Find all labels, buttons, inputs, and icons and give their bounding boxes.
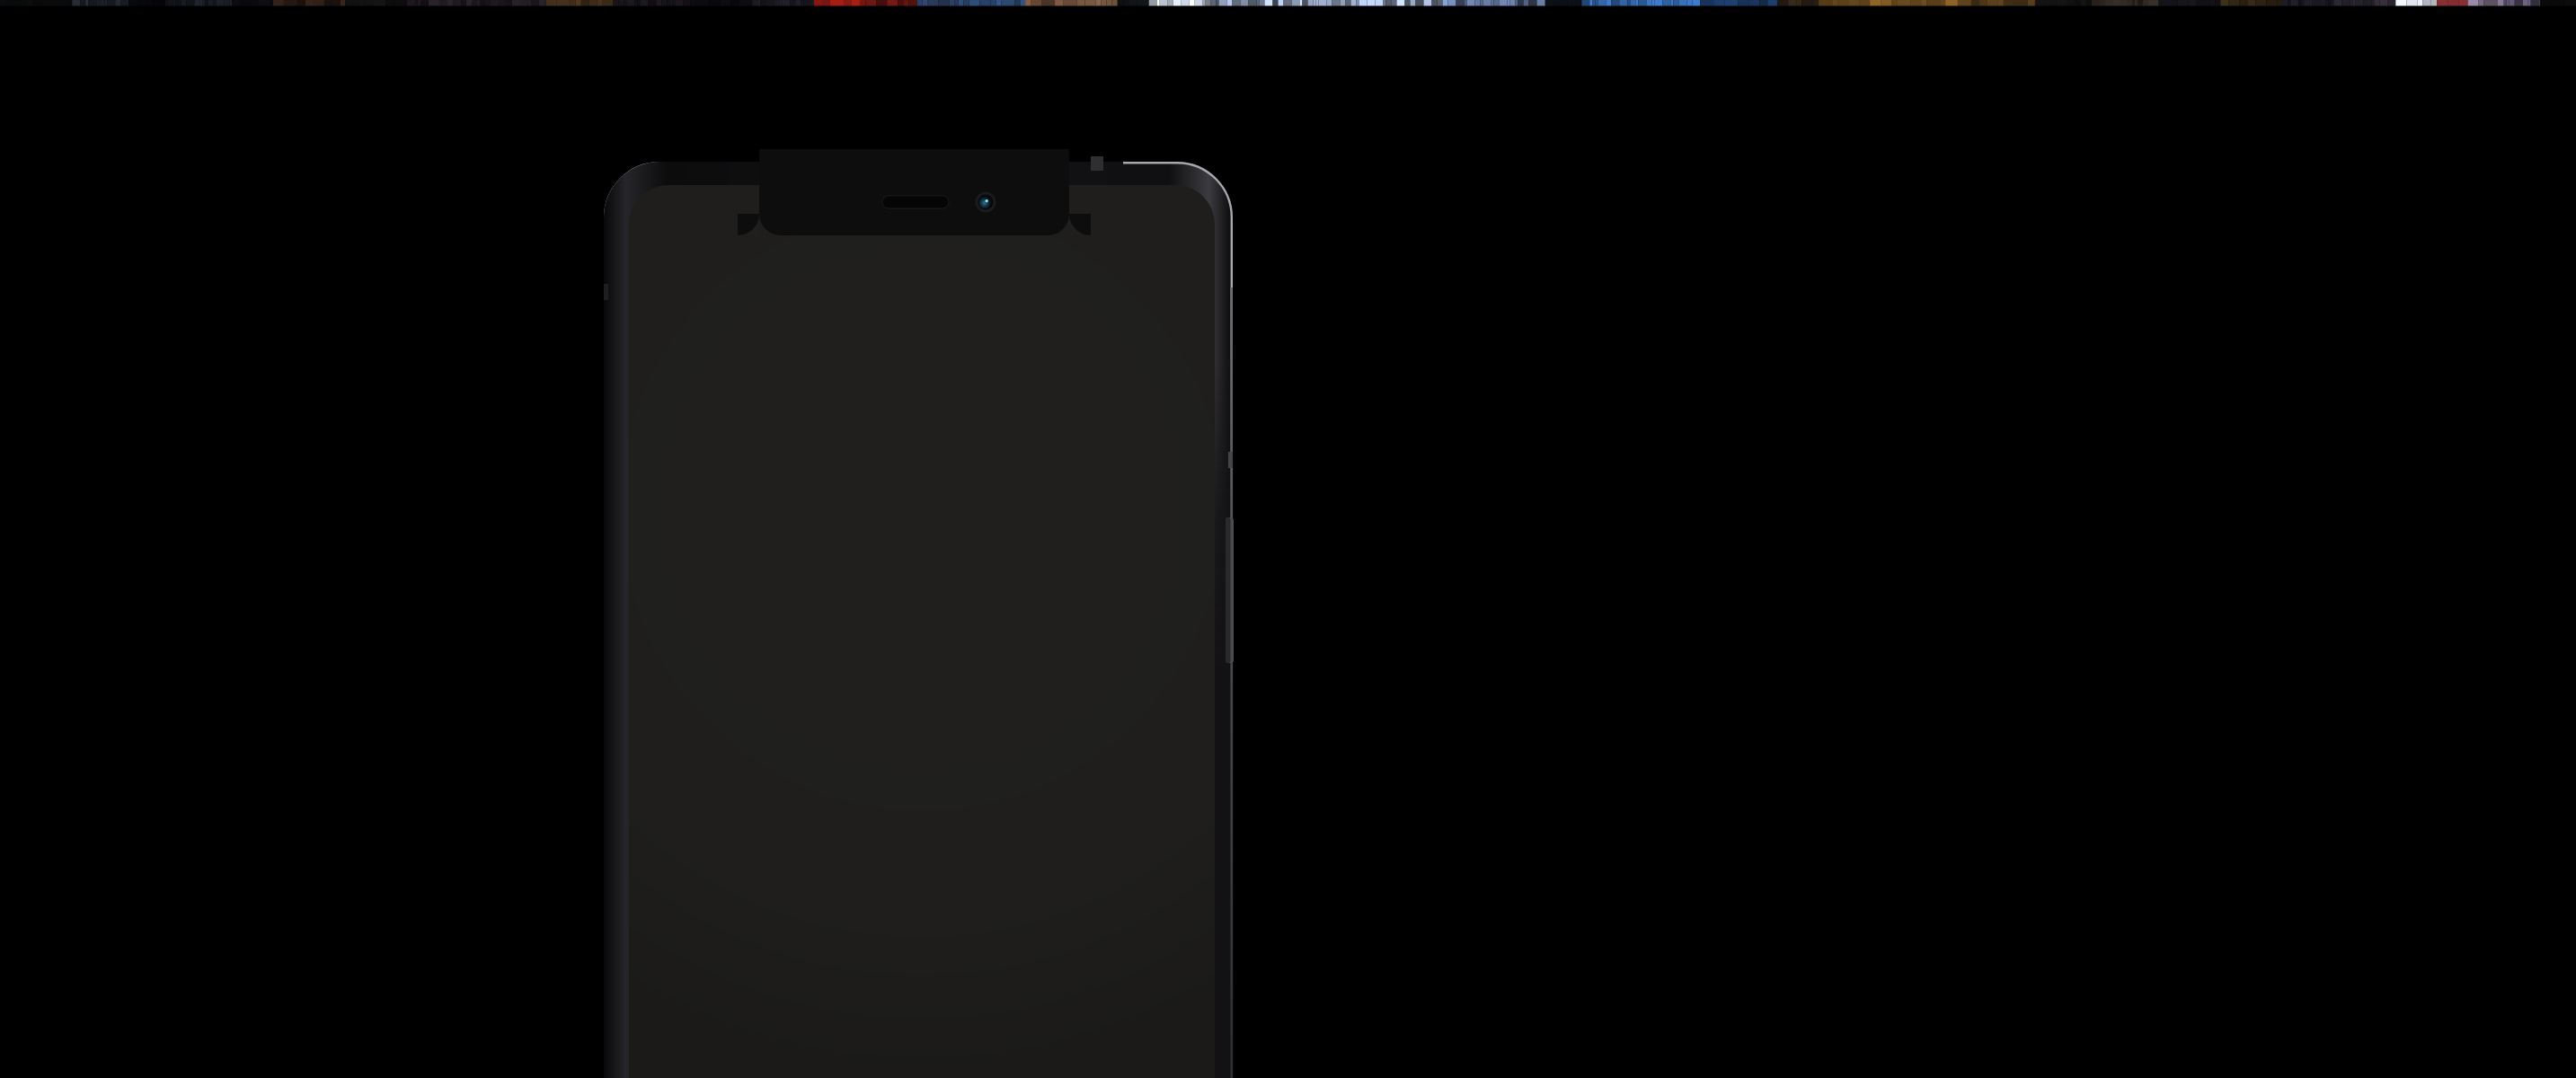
button[interactable]: Phone device mock-up on black background <box>0 0 2576 1078</box>
